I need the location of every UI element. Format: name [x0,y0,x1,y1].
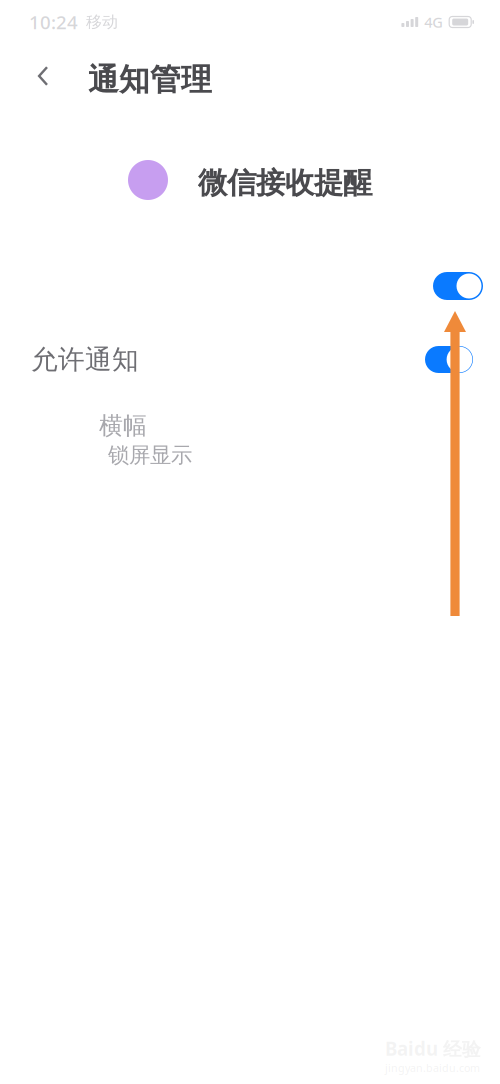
staticText: 10:24 [29,10,78,34]
staticText: 横幅 [99,411,147,440]
staticText: 微信接收提醒 [198,165,372,201]
button[interactable]: Back [26,56,60,96]
staticText: 移动 [86,12,118,32]
button[interactable]: 通知管理 [88,61,212,99]
button[interactable]: 允许通知 [0,334,500,378]
staticText: 通知管理 [88,61,212,99]
staticText: 4G [424,12,443,32]
staticText: Baidu 经验 [385,1036,481,1061]
staticText: 锁屏显示 [108,442,192,468]
staticText: 允许通知 [31,343,139,376]
staticText: jingyan.baidu.com [385,1061,480,1075]
button[interactable]: Allow notifications [433,272,483,300]
